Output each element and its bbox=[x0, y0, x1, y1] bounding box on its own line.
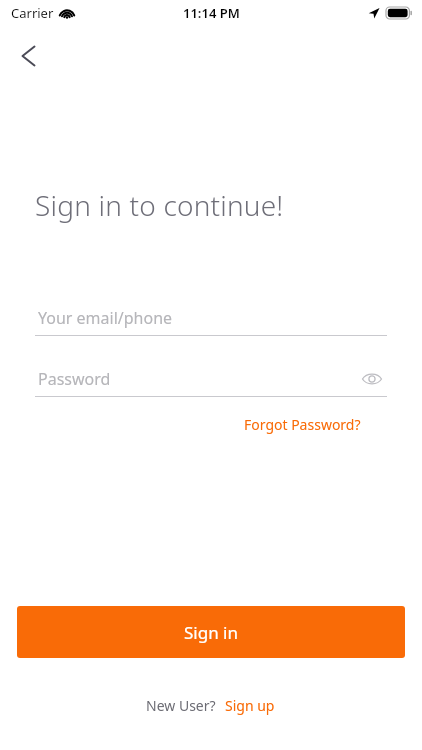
staticText: Forgot Password? bbox=[244, 415, 361, 434]
staticText: New User? bbox=[146, 696, 216, 715]
staticText: Carrier bbox=[11, 4, 54, 22]
button[interactable]: Back bbox=[8, 36, 48, 76]
staticText: 11:14 PM bbox=[183, 4, 240, 22]
staticText: Sign in bbox=[184, 621, 238, 644]
staticText: Password bbox=[38, 368, 111, 390]
button[interactable]: Sign up bbox=[223, 694, 277, 717]
staticText: Sign up bbox=[225, 696, 275, 715]
button[interactable]: Forgot Password? bbox=[240, 413, 365, 436]
button[interactable]: Your email/phone bbox=[35, 300, 387, 336]
button[interactable]: Sign in bbox=[17, 606, 405, 658]
staticText: Your email/phone bbox=[38, 307, 173, 329]
staticText: Sign in to continue! bbox=[35, 186, 284, 224]
button[interactable]: Password bbox=[35, 361, 387, 397]
button[interactable]: Show password bbox=[357, 364, 387, 394]
